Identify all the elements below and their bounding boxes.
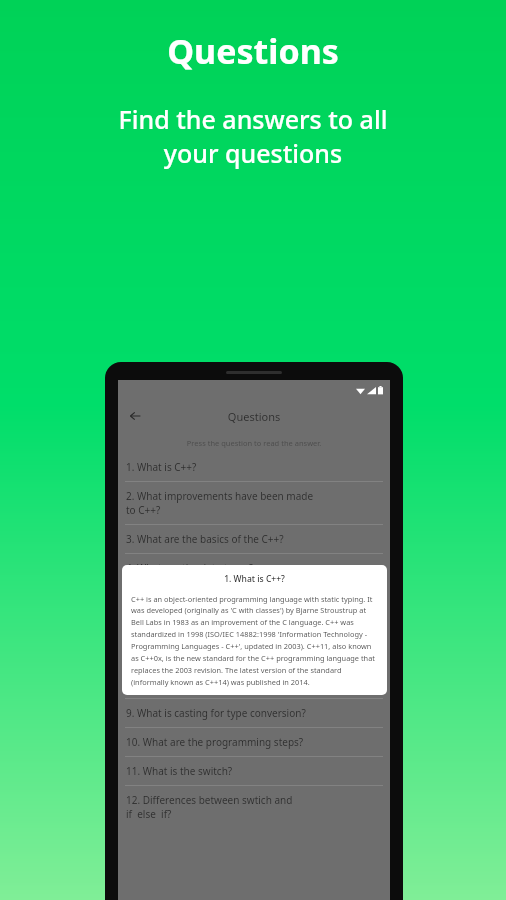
button[interactable]: 1. What is C++?	[118, 453, 390, 481]
staticText: Questions	[0, 28, 506, 74]
button[interactable]: 12. Differences between swtich and if el…	[118, 786, 390, 828]
staticText: 9. What is casting for type conversion?	[126, 706, 306, 720]
staticText: 5. What are the operators?	[126, 590, 251, 604]
button[interactable]: 3. What are the basics of the C++?	[118, 525, 390, 553]
button[interactable]: 2. What improvements have been made to C…	[118, 482, 390, 524]
staticText: 7. What is a function?	[126, 648, 226, 662]
button[interactable]: 1. What is C++?	[122, 565, 387, 695]
button[interactable]: 4. What are the data types?	[118, 554, 390, 582]
button[interactable]: 5. What are the operators?	[118, 583, 390, 611]
staticText: C++ is an object-oriented programming la…	[131, 594, 378, 687]
button[interactable]: 9. What is casting for type conversion?	[118, 699, 390, 727]
staticText: Questions	[118, 409, 390, 424]
button[interactable]: 8. Why is syntax very important?	[118, 670, 390, 698]
staticText: 2. What improvements have been made to C…	[126, 489, 314, 517]
staticText: 1. What is C++?	[131, 573, 378, 585]
staticText: 3. What are the basics of the C++?	[126, 532, 284, 546]
staticText: Find the answers to all your questions	[24, 102, 482, 170]
button[interactable]: 10. What are the programming steps?	[118, 728, 390, 756]
staticText: 12. Differences between swtich and if el…	[126, 793, 293, 821]
staticText: 8. Why is syntax very important?	[126, 677, 278, 691]
button[interactable]: 11. What is the switch?	[118, 757, 390, 785]
staticText: 1. What is C++?	[126, 460, 197, 474]
button[interactable]: 7. What is a function?	[118, 641, 390, 669]
button[interactable]: Back	[123, 404, 147, 428]
staticText: 4. What are the data types?	[126, 561, 254, 575]
staticText: 6. What are the loops?	[126, 619, 231, 633]
staticText: 10. What are the programming steps?	[126, 735, 304, 749]
button[interactable]: 6. What are the loops?	[118, 612, 390, 640]
staticText: 11. What is the switch?	[126, 764, 233, 778]
staticText: Press the question to read the answer.	[118, 438, 390, 448]
